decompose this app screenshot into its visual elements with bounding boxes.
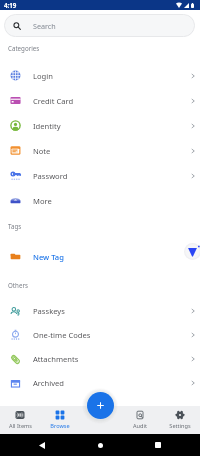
button[interactable]: Archived (0, 371, 200, 395)
staticText: Tags (8, 222, 22, 230)
button[interactable]: All Items (0, 406, 40, 434)
button[interactable]: Search (4, 14, 195, 37)
staticText: Credit Card (33, 96, 74, 106)
button[interactable]: More (0, 188, 200, 213)
button[interactable]: Settings (160, 406, 200, 434)
button[interactable]: Login (0, 63, 200, 88)
button[interactable]: Browse (40, 406, 80, 434)
button[interactable]: Note (0, 138, 200, 163)
staticText: All Items (9, 422, 32, 430)
staticText: Attachments (33, 354, 79, 364)
button[interactable]: Add item (87, 392, 114, 419)
staticText: 4:19 (4, 1, 17, 9)
staticText: Browse (50, 422, 70, 430)
staticText: More (33, 196, 52, 206)
staticText: Categories (8, 44, 40, 52)
staticText: Audit (133, 422, 147, 430)
button[interactable]: Home (91, 434, 109, 456)
button[interactable]: Back (33, 434, 51, 456)
staticText: Login (33, 71, 53, 81)
staticText: Archived (33, 378, 64, 388)
button[interactable]: Identity (0, 113, 200, 138)
staticText: Settings (169, 422, 191, 430)
button[interactable]: Audit (120, 406, 160, 434)
button[interactable]: Credit Card (0, 88, 200, 113)
staticText: New Tag (33, 252, 64, 262)
staticText: Note (33, 146, 51, 156)
staticText: One-time Codes (33, 330, 91, 340)
staticText: Search (33, 21, 56, 31)
staticText: Password (33, 171, 68, 181)
button[interactable]: Recents (149, 434, 167, 456)
staticText: Others (8, 281, 28, 289)
button[interactable]: New Tag (0, 242, 200, 271)
staticText: Passkeys (33, 306, 65, 316)
button[interactable]: One-time Codes (0, 323, 200, 347)
button[interactable]: Attachments (0, 347, 200, 371)
button[interactable]: Password (0, 163, 200, 188)
staticText: Identity (33, 121, 61, 131)
button[interactable]: Passkeys (0, 299, 200, 323)
